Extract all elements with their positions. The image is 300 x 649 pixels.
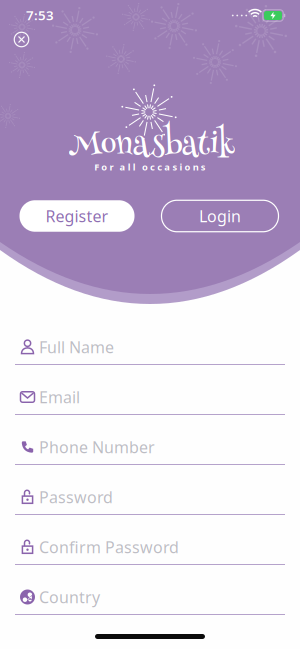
button[interactable]: Register — [19, 200, 134, 232]
staticText: Phone Number — [39, 436, 155, 458]
button[interactable]: Close — [8, 26, 34, 52]
staticText: 7:53 — [26, 6, 54, 24]
staticText: Password — [39, 486, 113, 508]
staticText: Confirm Password — [39, 536, 179, 558]
button[interactable]: Full Name — [15, 330, 285, 365]
staticText: Full Name — [39, 336, 114, 358]
button[interactable]: Password — [15, 480, 285, 515]
button[interactable]: Email — [15, 380, 285, 415]
button[interactable]: Confirm Password — [15, 530, 285, 565]
staticText: Login — [199, 205, 241, 227]
staticText: Register — [45, 205, 108, 227]
button[interactable]: Country — [15, 580, 285, 615]
button[interactable]: Phone Number — [15, 430, 285, 465]
staticText: Monasbatik — [69, 120, 235, 174]
button[interactable]: Login — [161, 200, 278, 232]
staticText: Country — [39, 586, 100, 608]
staticText: Email — [39, 386, 80, 408]
staticText: For all occasions — [94, 161, 206, 173]
